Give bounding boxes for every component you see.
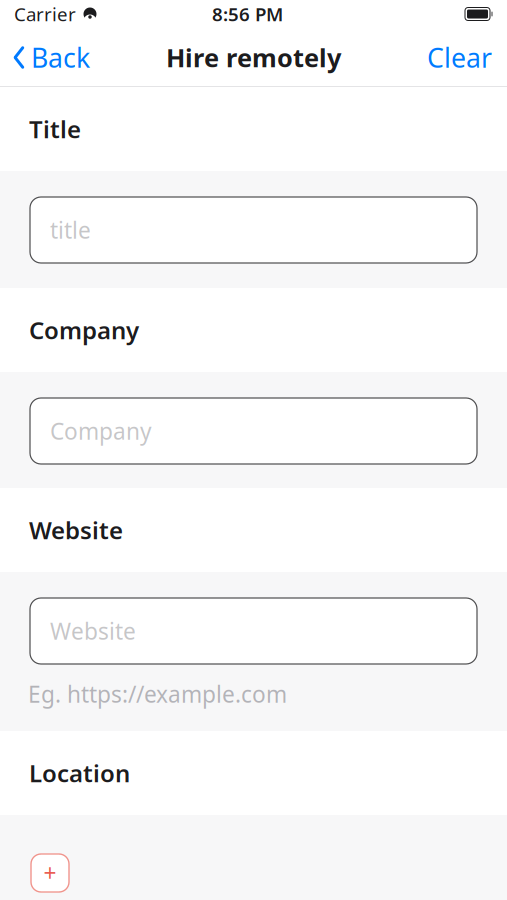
staticText: title xyxy=(50,215,91,245)
staticText: Carrier xyxy=(14,2,76,26)
button[interactable]: Back xyxy=(0,35,102,79)
button[interactable]: Clear xyxy=(412,35,507,79)
staticText: Back xyxy=(31,40,90,75)
staticText: Hire remotely xyxy=(166,41,341,74)
button[interactable]: title xyxy=(30,197,477,263)
staticText: Website xyxy=(50,616,136,646)
button[interactable]: Website xyxy=(30,598,477,664)
staticText: Company xyxy=(29,314,139,346)
staticText: Eg. https://example.com xyxy=(28,679,287,709)
staticText: 8:56 PM xyxy=(212,2,283,26)
button[interactable]: Company xyxy=(30,398,477,464)
staticText: Title xyxy=(29,113,81,145)
staticText: Location xyxy=(29,757,130,789)
staticText: + xyxy=(43,858,56,888)
staticText: Company xyxy=(50,416,152,446)
staticText: Website xyxy=(29,514,123,546)
button[interactable]: Add location xyxy=(31,854,69,892)
staticText: Clear xyxy=(427,40,492,75)
